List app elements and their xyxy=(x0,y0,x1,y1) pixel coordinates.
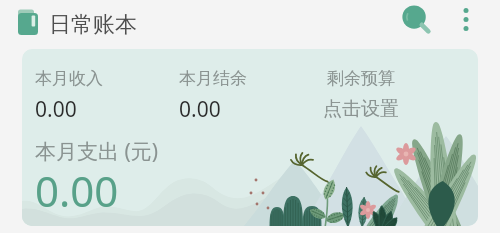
staticText: 0.00 xyxy=(179,95,221,124)
button[interactable]: More options xyxy=(453,0,479,39)
staticText: 本月收入 xyxy=(35,68,103,89)
staticText: 日常账本 xyxy=(49,11,137,39)
button[interactable]: 剩余预算 xyxy=(316,63,406,126)
button[interactable]: Search xyxy=(396,0,436,39)
staticText: 点击设置 xyxy=(323,97,399,121)
staticText: 本月结余 xyxy=(179,68,247,89)
staticText: 0.00 xyxy=(35,95,77,124)
staticText: 0.00 xyxy=(35,162,119,219)
staticText: 本月支出 (元) xyxy=(35,137,159,166)
staticText: 剩余预算 xyxy=(327,68,395,89)
